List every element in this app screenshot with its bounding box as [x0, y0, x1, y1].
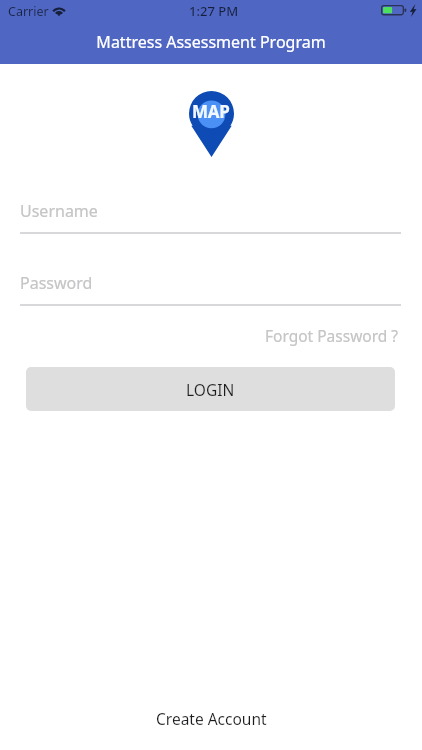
- other: MAP logo: [189, 91, 234, 157]
- staticText: Create Account: [156, 708, 267, 729]
- staticText: Password: [20, 272, 93, 294]
- other: Battery charging: [381, 5, 408, 16]
- staticText: Mattress Assessment Program: [0, 31, 422, 53]
- staticText: LOGIN: [186, 379, 235, 400]
- button[interactable]: Username: [20, 196, 401, 236]
- button[interactable]: Create Account: [152, 704, 271, 733]
- staticText: Carrier: [8, 3, 49, 20]
- button[interactable]: LOGIN: [26, 367, 395, 411]
- staticText: Username: [20, 200, 98, 222]
- staticText: Forgot Password ?: [265, 325, 399, 346]
- button[interactable]: Forgot Password ?: [265, 325, 399, 346]
- staticText: MAP: [192, 100, 230, 123]
- staticText: 1:27 PM: [189, 2, 239, 20]
- other: Wi-Fi: [50, 5, 68, 16]
- button[interactable]: Password: [20, 268, 401, 308]
